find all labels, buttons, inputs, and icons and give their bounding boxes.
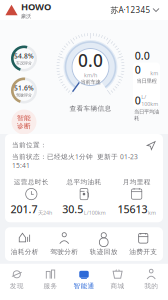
staticText: km xyxy=(150,70,158,77)
staticText: L/100km xyxy=(84,209,106,216)
staticText: HOWO xyxy=(21,0,51,13)
staticText: 当前状态：已经熄火1分钟 更新于 01-23 15:41 xyxy=(12,152,138,170)
staticText: 油费开支 xyxy=(129,248,157,256)
staticText: 油耗分析 xyxy=(11,248,39,256)
staticText: 0.00 xyxy=(135,48,150,77)
staticText: km/h xyxy=(84,72,97,79)
button[interactable]: 油耗分析 xyxy=(5,232,44,256)
button[interactable]: 智能 xyxy=(11,109,36,134)
button[interactable]: 苏A·12345 xyxy=(106,3,163,17)
button[interactable]: 油费开支 xyxy=(123,232,163,256)
staticText: 驾驶评分 xyxy=(16,93,32,98)
button[interactable]: 查看车辆信息 xyxy=(69,104,111,113)
staticText: 0.0 xyxy=(78,49,103,72)
staticText: 当日平均油耗 xyxy=(134,108,159,122)
staticText: 豪沃 xyxy=(21,13,31,19)
staticText: 驾驶分析 xyxy=(50,248,78,256)
staticText: 智能通 xyxy=(73,282,94,290)
button[interactable]: 我的 xyxy=(134,269,168,290)
staticText: 当前位置： xyxy=(12,141,47,149)
staticText: km xyxy=(148,209,156,216)
staticText: 51.6% xyxy=(14,83,34,92)
staticText: 我的 xyxy=(144,282,158,290)
button[interactable]: 54.8% xyxy=(11,45,37,71)
button[interactable]: 51.6% xyxy=(11,77,37,103)
staticText: 查看车辆信息 xyxy=(69,104,111,113)
staticText: 0 xyxy=(135,93,141,107)
staticText: 54.8% xyxy=(14,51,34,60)
button[interactable]: 服务 xyxy=(34,269,67,290)
button[interactable]: 发现 xyxy=(0,269,34,290)
staticText: 月均里程 xyxy=(123,178,151,186)
button[interactable]: 商城 xyxy=(101,269,134,290)
button[interactable]: 驾驶分析 xyxy=(44,232,84,256)
staticText: 当前车速 xyxy=(80,79,100,85)
staticText: 运营总时长 xyxy=(14,178,49,186)
staticText: 当日里程 xyxy=(136,78,156,84)
staticText: 发现 xyxy=(10,282,24,290)
staticText: 总平均油耗 xyxy=(66,178,101,186)
button[interactable]: 定位导航 xyxy=(146,141,156,150)
staticText: 诊断 xyxy=(17,122,31,130)
staticText: 服务 xyxy=(43,282,57,290)
button[interactable]: 智能通 xyxy=(67,269,101,290)
staticText: 商城 xyxy=(111,282,125,290)
staticText: 201.7 xyxy=(11,202,38,216)
staticText: 智能 xyxy=(17,114,31,122)
staticText: L/100km xyxy=(141,93,158,107)
staticText: 15613 xyxy=(117,202,147,216)
button[interactable]: 轨迹回放 xyxy=(84,232,123,256)
staticText: 车况评分 xyxy=(16,61,32,66)
staticText: 轨迹回放 xyxy=(90,248,118,256)
staticText: 30.5 xyxy=(62,202,83,216)
staticText: 天24h xyxy=(38,209,52,216)
staticText: 苏A·12345 xyxy=(110,5,150,15)
